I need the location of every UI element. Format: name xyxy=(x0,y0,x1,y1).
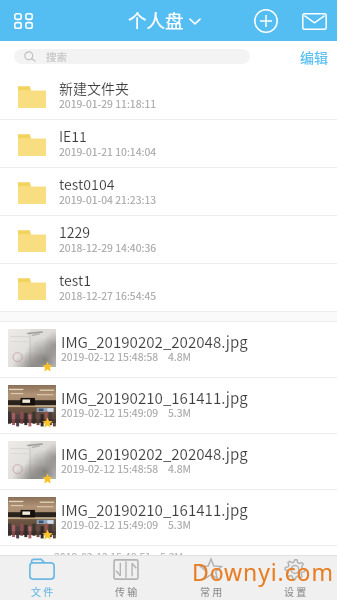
staticText: 文 件 xyxy=(31,584,54,598)
button[interactable]: Grid view xyxy=(8,6,38,36)
staticText: 个人盘 xyxy=(128,7,184,34)
staticText: IMG_20190202_202048.jpg xyxy=(61,443,248,465)
staticText: 2019-02-12 15:48:58 xyxy=(61,461,159,476)
staticText: 新建文件夹 xyxy=(59,78,129,98)
staticText: IMG_20190210_161411.jpg xyxy=(61,499,248,521)
button[interactable]: test1 xyxy=(0,264,337,312)
button[interactable]: 设 置 xyxy=(253,556,337,600)
staticText: 常 用 xyxy=(200,584,223,598)
staticText: 5.3M xyxy=(168,405,192,420)
staticText: IMG_20190210_161411.jpg xyxy=(61,387,248,409)
staticText: 2018-12-29 14:40:36 xyxy=(59,240,157,255)
button[interactable]: IMG_20190202_202048.jpg xyxy=(0,322,337,378)
staticText: 5.3M xyxy=(160,549,184,555)
staticText: 2019-01-29 11:18:11 xyxy=(59,96,157,111)
staticText: test1 xyxy=(59,270,92,290)
staticText: 2019-02-12 15:49:09 xyxy=(61,405,159,420)
staticText: 传 输 xyxy=(115,584,138,598)
staticText: 2019-01-04 21:23:13 xyxy=(59,192,157,207)
staticText: test0104 xyxy=(59,174,115,194)
staticText: 设 置 xyxy=(284,584,307,598)
staticText: Downyi.com xyxy=(192,556,334,587)
button[interactable]: 1229 xyxy=(0,216,337,264)
staticText: 2019-01-21 10:14:04 xyxy=(59,144,157,159)
staticText: IE11 xyxy=(59,126,87,146)
staticText: 4.8M xyxy=(168,349,192,364)
button[interactable]: 文 件 xyxy=(0,556,84,600)
button[interactable]: IMG_20190210_161411.jpg xyxy=(0,490,337,546)
staticText: 2019-02-12 15:48:58 xyxy=(61,349,159,364)
staticText: 2019-02-12 15:49:09 xyxy=(61,517,159,532)
button[interactable]: 2019-02-12 15:48:51 xyxy=(0,546,337,555)
button[interactable]: 编辑 xyxy=(299,47,329,67)
button[interactable]: IMG_20190210_161411.jpg xyxy=(0,378,337,434)
button[interactable]: test0104 xyxy=(0,168,337,216)
button[interactable]: 新建文件夹 xyxy=(0,72,337,120)
staticText: 搜索 xyxy=(46,49,67,64)
button[interactable]: IE11 xyxy=(0,120,337,168)
button[interactable]: Add xyxy=(249,4,283,38)
staticText: 2019-02-12 15:48:51 xyxy=(54,549,152,555)
staticText: IMG_20190202_202048.jpg xyxy=(61,331,248,353)
button[interactable]: Messages xyxy=(297,4,331,38)
button[interactable]: 传 输 xyxy=(84,556,168,600)
button[interactable]: 搜索 xyxy=(14,49,250,64)
staticText: 2018-12-27 16:54:45 xyxy=(59,288,157,303)
button[interactable]: IMG_20190202_202048.jpg xyxy=(0,434,337,490)
button[interactable]: 个人盘 xyxy=(128,7,201,34)
button[interactable]: 常 用 xyxy=(169,556,253,600)
staticText: 4.8M xyxy=(168,461,192,476)
staticText: 5.3M xyxy=(168,517,192,532)
staticText: 1229 xyxy=(59,222,91,242)
